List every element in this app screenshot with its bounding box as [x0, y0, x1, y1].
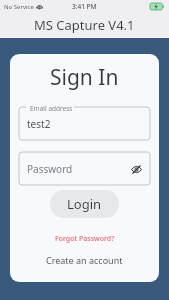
button[interactable]: test2	[19, 107, 150, 140]
button[interactable]: Create an account	[40, 252, 129, 268]
staticText: Create an account	[46, 254, 123, 266]
staticText: Sign In	[50, 63, 119, 92]
button[interactable]: Show password	[129, 162, 143, 176]
staticText: 3:41 PM	[72, 2, 97, 11]
staticText: Email address	[30, 104, 73, 113]
staticText: Login	[67, 195, 102, 213]
staticText: MS Capture V4.1	[34, 16, 135, 34]
button[interactable]: Login	[50, 190, 119, 218]
button[interactable]: Password	[19, 152, 150, 185]
staticText: Forgot Password?	[55, 234, 115, 244]
staticText: test2	[27, 117, 51, 131]
button[interactable]: Forgot Password?	[49, 232, 121, 246]
staticText: No Service	[4, 3, 34, 11]
staticText: Password	[27, 162, 73, 176]
